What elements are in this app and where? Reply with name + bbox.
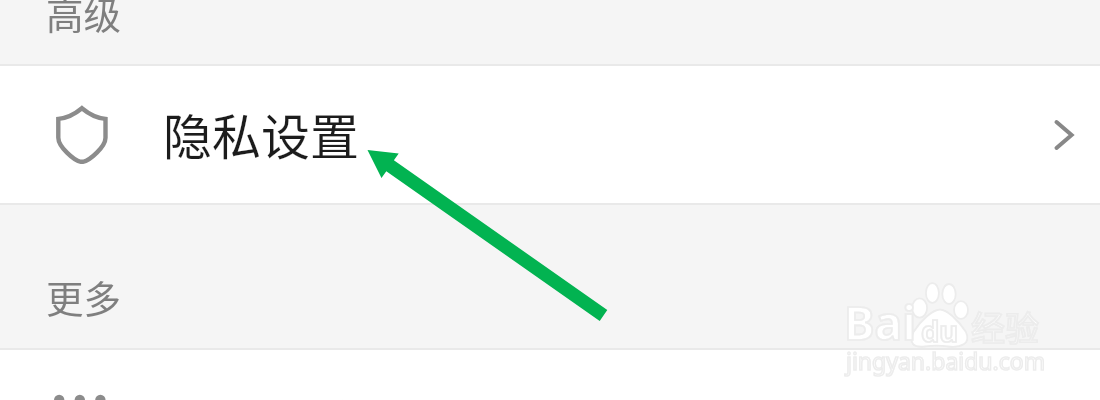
staticText: 高级 [46,0,121,39]
staticText: 更多 [46,269,121,323]
button[interactable]: 更多功能 [0,350,1100,400]
staticText: jingyan.baidu.com [846,345,1046,376]
staticText: du [921,311,959,350]
staticText: Bai [844,291,916,354]
staticText: jingyan.baidu.com [846,345,1046,376]
staticText: Bai [844,291,916,354]
staticText: 经验 [971,302,1039,351]
button[interactable]: 隐私设置 [0,66,1100,203]
other: 更多功能 [54,393,106,400]
other: 打开隐私设置 [1054,119,1074,151]
staticText: 隐私设置 [163,98,360,169]
staticText: 经验 [971,302,1039,351]
